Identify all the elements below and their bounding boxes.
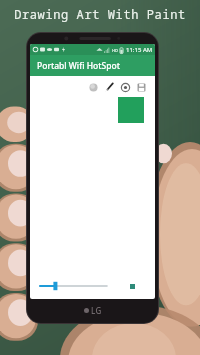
staticText: HD xyxy=(112,48,118,53)
staticText: LG xyxy=(91,305,102,316)
staticText: 11:15 AM xyxy=(126,46,153,54)
button[interactable]: Brush xyxy=(103,81,116,94)
button[interactable]: Color picker xyxy=(87,81,100,94)
button[interactable] xyxy=(40,279,107,293)
button[interactable]: Portabl Wifi HotSpot xyxy=(30,55,155,76)
staticText: Portabl Wifi HotSpot xyxy=(37,60,120,72)
button[interactable]: Save xyxy=(135,81,148,94)
button[interactable]: Eraser xyxy=(119,81,132,94)
button[interactable]: Marker xyxy=(125,279,139,293)
staticText: Drawing Art With Paint xyxy=(0,6,200,22)
